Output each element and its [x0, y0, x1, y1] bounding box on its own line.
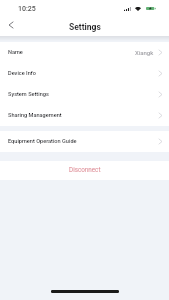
button[interactable]: Back [3, 19, 19, 35]
staticText: Disconnect [69, 166, 101, 173]
button[interactable]: Device Info [0, 63, 169, 84]
staticText: System Settings [8, 91, 49, 98]
button[interactable]: Equipment Operation Guide [0, 131, 169, 152]
button[interactable]: Sharing Management [0, 105, 169, 126]
staticText: Name [8, 49, 23, 56]
staticText: Device Info [8, 70, 36, 77]
button[interactable]: System Settings [0, 84, 169, 105]
staticText: Sharing Management [8, 112, 62, 119]
staticText: Equipment Operation Guide [8, 138, 77, 145]
staticText: Xiangk [135, 49, 154, 56]
staticText: Settings [69, 22, 101, 32]
button[interactable]: Name [0, 42, 169, 63]
button[interactable]: Disconnect [0, 161, 169, 180]
staticText: 10:25 [18, 5, 36, 13]
